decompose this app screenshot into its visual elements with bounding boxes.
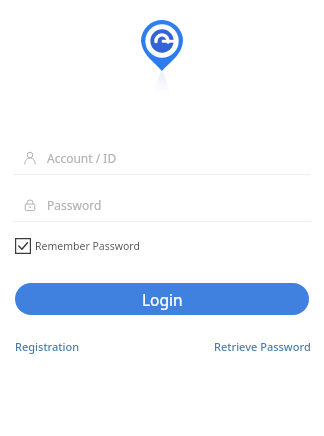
button[interactable]: Login	[15, 283, 309, 315]
staticText: Remember Password	[35, 239, 140, 253]
staticText: Account / ID	[47, 150, 117, 166]
button[interactable]: Password	[13, 193, 311, 222]
staticText: Registration	[15, 339, 80, 354]
button[interactable]: Account / ID	[13, 146, 311, 175]
button[interactable]: Remember Password	[14, 236, 141, 255]
button[interactable]: Registration	[13, 337, 82, 356]
staticText: Password	[47, 197, 102, 213]
staticText: Login	[142, 289, 183, 310]
button[interactable]: Retrieve Password	[212, 337, 313, 356]
staticText: Retrieve Password	[214, 339, 311, 354]
